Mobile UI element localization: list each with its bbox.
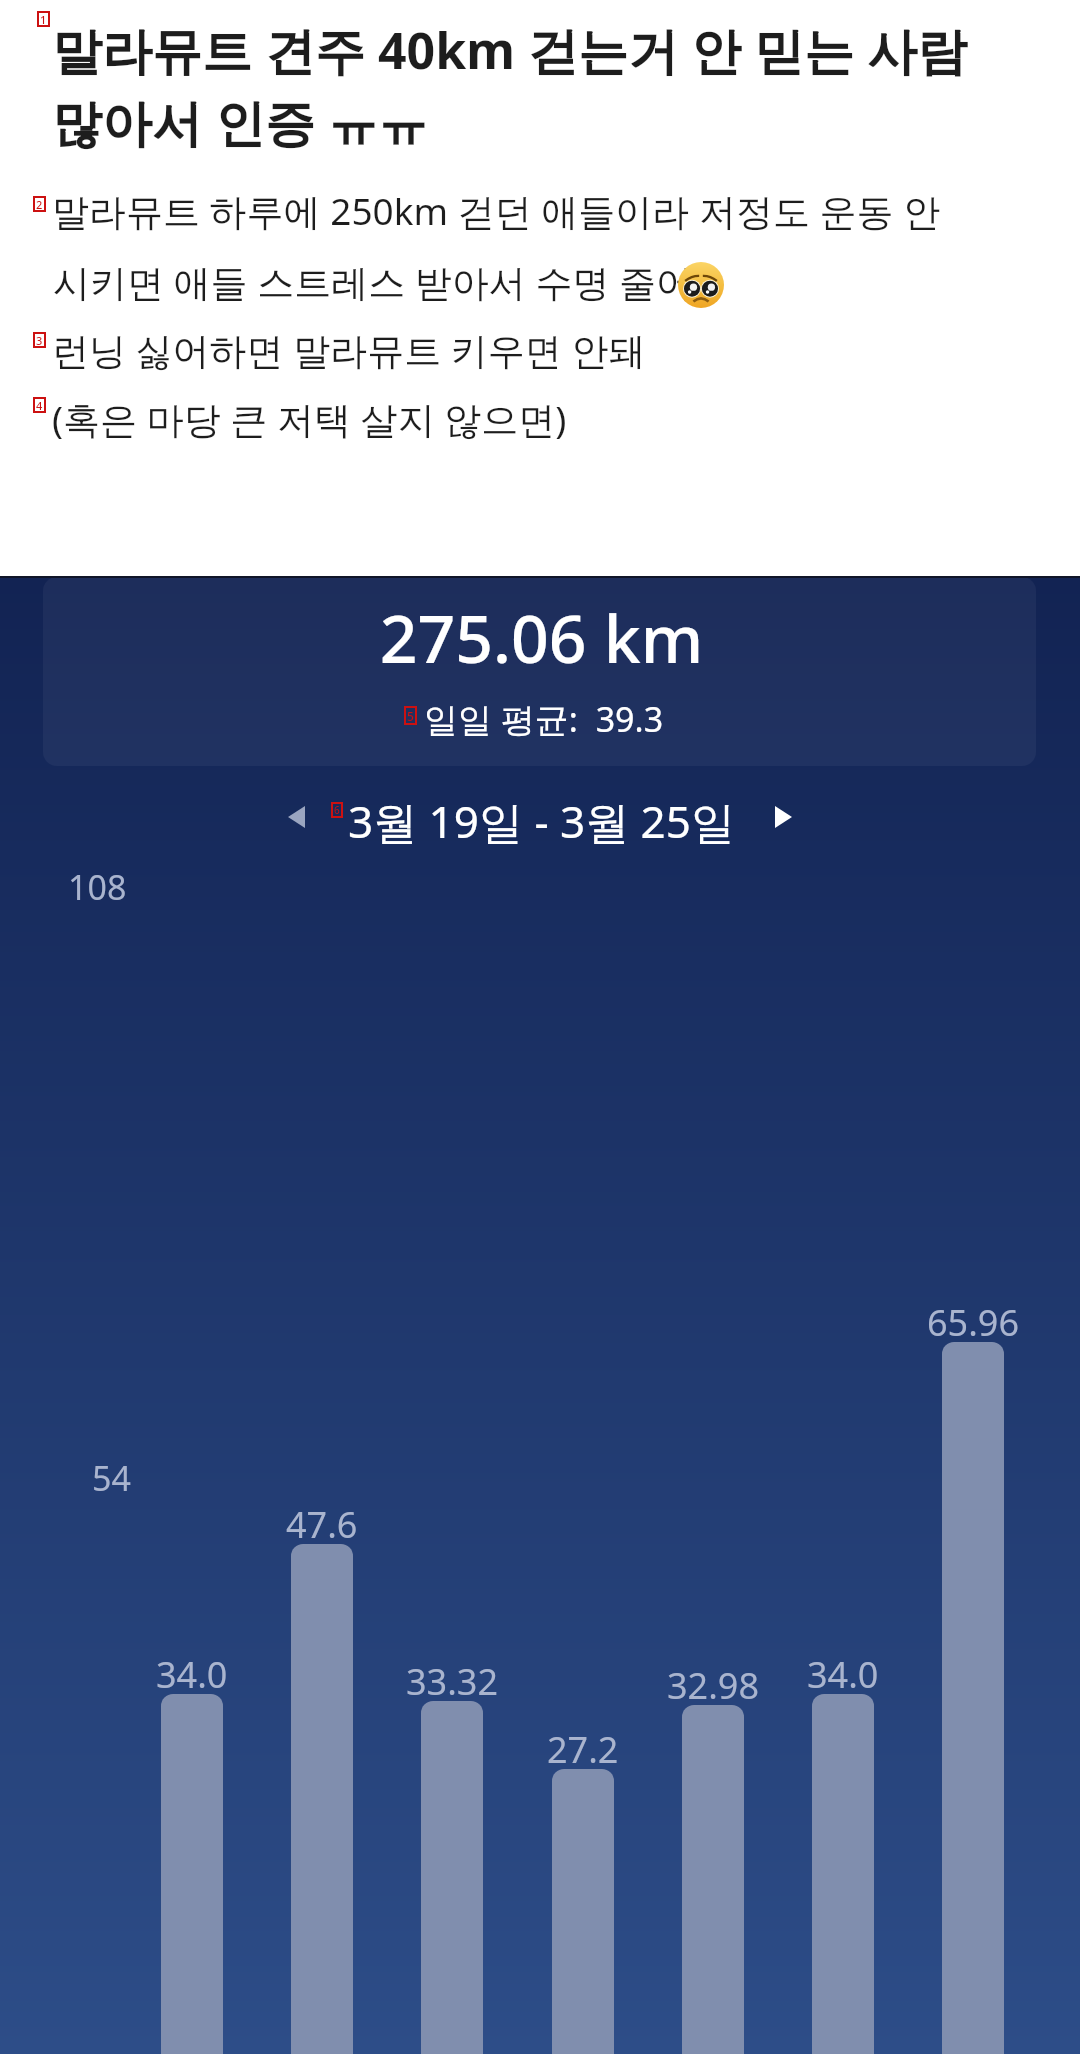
button[interactable]: Day 1: 34.0 km <box>161 1694 223 2054</box>
staticText: 6 <box>334 803 340 817</box>
staticText: 2 <box>36 197 43 212</box>
button[interactable]: Day 6: 34.0 km <box>812 1694 874 2054</box>
staticText: 5 <box>407 708 414 724</box>
staticText: 275.06 km <box>45 592 1036 682</box>
staticText: 많아서 인증 ㅠㅠ <box>52 88 428 156</box>
staticText: 54 <box>92 1455 131 1501</box>
button[interactable]: Day 5: 32.98 km <box>682 1705 744 2054</box>
staticText: 3 <box>36 333 43 348</box>
staticText: 1 <box>40 12 47 27</box>
staticText: 108 <box>68 864 127 910</box>
button[interactable]: Day 2: 47.6 km <box>291 1544 353 2054</box>
staticText: 일일 평균: 39.3 <box>424 696 664 742</box>
button[interactable]: Day 7: 65.96 km <box>942 1342 1004 2054</box>
button[interactable]: Day 3: 33.32 km <box>421 1701 483 2054</box>
button[interactable]: Previous week <box>276 797 316 837</box>
staticText: 34.0 <box>807 1650 879 1699</box>
staticText: 65.96 <box>927 1298 1020 1347</box>
staticText: 34.0 <box>156 1650 228 1699</box>
staticText: 3월 19일 - 3월 25일 <box>348 791 735 851</box>
staticText: (혹은 마당 큰 저택 살지 않으면) <box>52 393 567 444</box>
staticText: 시키면 애들 스트레스 받아서 수명 줄어 <box>53 256 694 307</box>
staticText: 말라뮤트 하루에 250km 걷던 애들이라 저정도 운동 안 <box>52 185 941 236</box>
staticText: 27.2 <box>547 1725 619 1774</box>
button[interactable]: 275.06 km <box>43 577 1036 766</box>
staticText: 4 <box>36 398 43 413</box>
staticText: 47.6 <box>286 1500 358 1549</box>
button[interactable]: Day 4: 27.2 km <box>552 1769 614 2054</box>
staticText: 런닝 싫어하면 말라뮤트 키우면 안돼 <box>52 324 646 375</box>
staticText: 32.98 <box>667 1661 760 1710</box>
staticText: 말라뮤트 견주 40km 걷는거 안 믿는 사람 <box>52 16 967 84</box>
staticText: 33.32 <box>406 1657 499 1706</box>
button[interactable]: Next week <box>763 797 803 837</box>
